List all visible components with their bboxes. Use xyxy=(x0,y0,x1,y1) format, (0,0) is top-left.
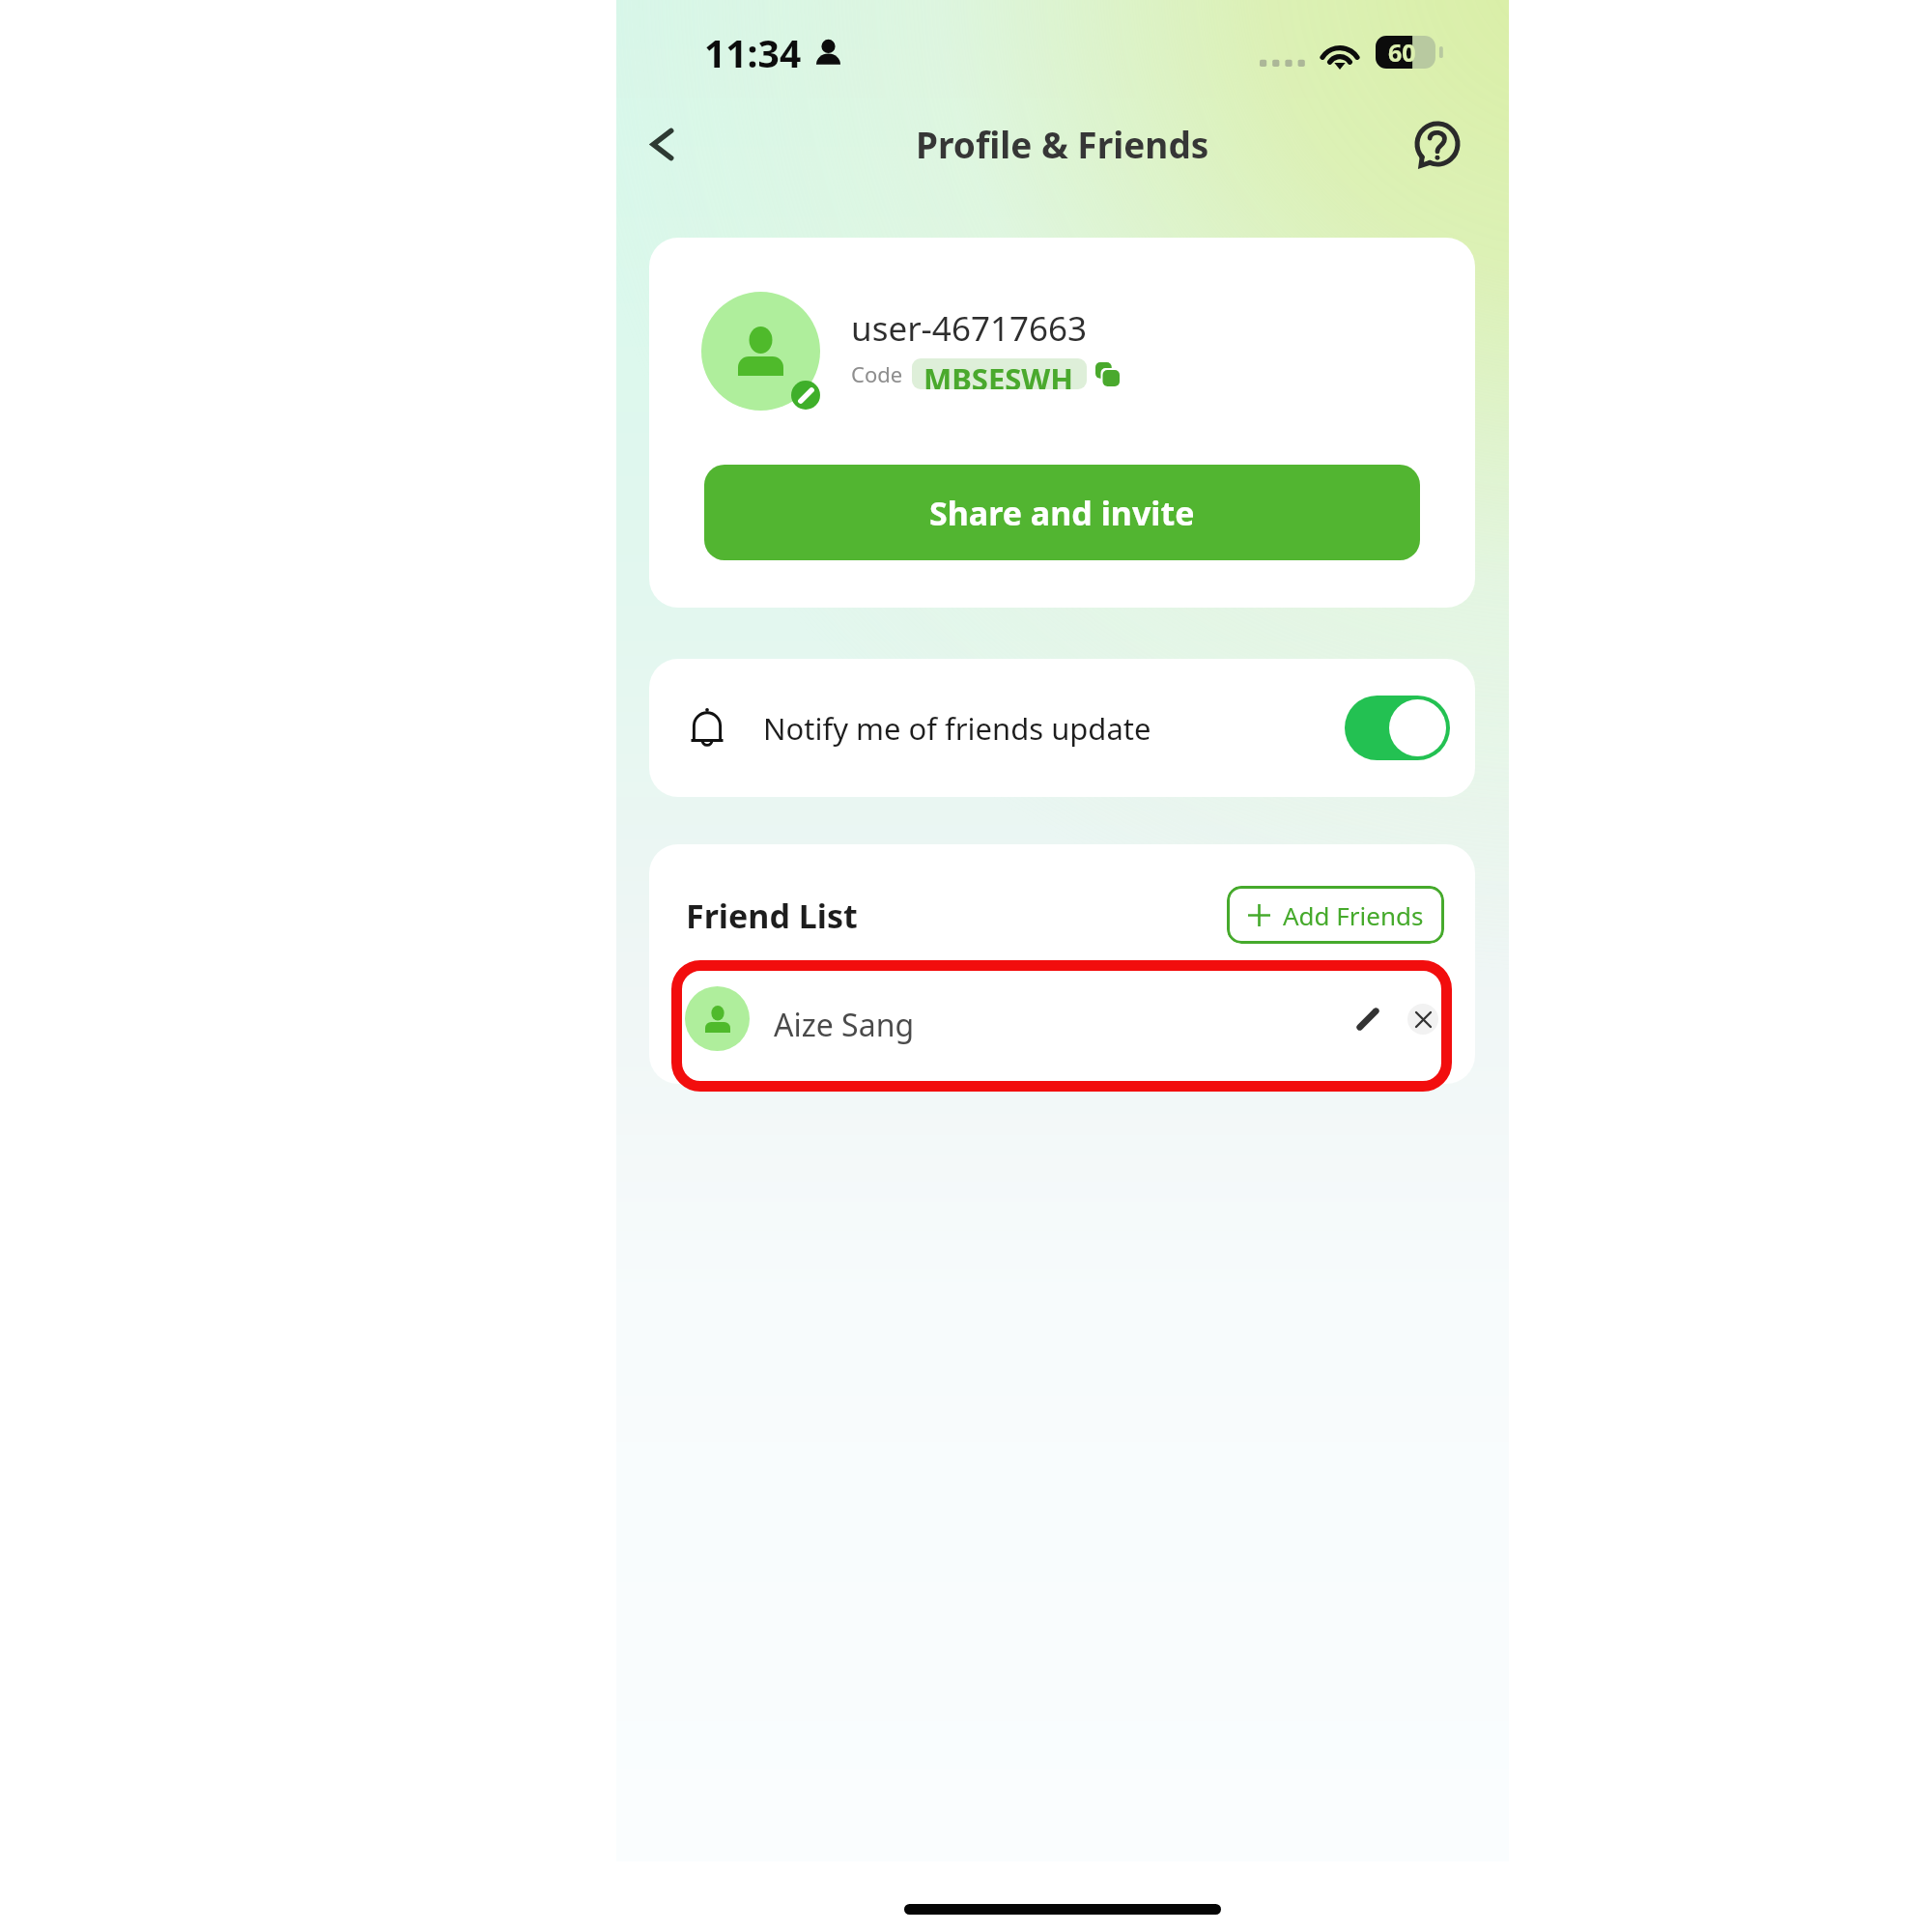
button[interactable]: Back xyxy=(623,105,700,183)
button[interactable]: Notify me of friends update xyxy=(649,659,1475,797)
button[interactable]: Add Friends xyxy=(1227,886,1444,944)
staticText: MBSESWH xyxy=(923,358,1074,389)
button[interactable]: Aize Sang xyxy=(671,960,1452,1092)
staticText: Share and invite xyxy=(929,491,1195,535)
staticText: Friend List xyxy=(686,894,858,938)
staticText: Notify me of friends update xyxy=(763,708,1151,749)
button[interactable]: Share and invite xyxy=(704,465,1420,560)
button[interactable]: Profile picture xyxy=(701,292,820,411)
staticText: Code xyxy=(851,359,903,388)
button[interactable]: Edit profile picture xyxy=(791,381,820,410)
button[interactable]: Copy code xyxy=(1091,357,1123,390)
button[interactable]: Edit friend name xyxy=(1342,993,1394,1045)
staticText: user-46717663 xyxy=(851,305,1088,352)
staticText: Add Friends xyxy=(1283,898,1424,932)
staticText: 60 xyxy=(1388,36,1416,69)
button[interactable]: Help xyxy=(1401,107,1474,181)
button[interactable]: Remove friend xyxy=(1407,1004,1438,1035)
staticText: Profile & Friends xyxy=(916,120,1209,168)
staticText: Aize Sang xyxy=(774,1004,915,1046)
button[interactable]: Notify me of friends update toggle xyxy=(1345,696,1450,760)
staticText: 11:34 xyxy=(704,27,802,78)
